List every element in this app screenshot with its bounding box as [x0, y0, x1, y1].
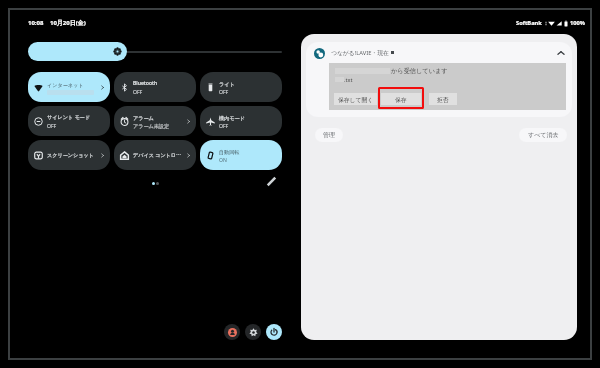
button[interactable]: 自動回転 — [200, 140, 282, 170]
button[interactable]: Edit quick settings — [263, 173, 279, 189]
staticText: .txt — [344, 76, 353, 84]
staticText: から受信しています — [391, 67, 448, 75]
staticText: 10月20日(金) — [50, 19, 86, 27]
staticText: アラーム — [133, 115, 154, 121]
button[interactable]: 拒否 — [429, 93, 457, 105]
staticText: 保存 — [395, 96, 407, 103]
button[interactable]: 機内モード — [200, 106, 282, 136]
staticText: 拒否 — [437, 96, 449, 103]
button[interactable]: デバイス コントロール — [114, 140, 196, 170]
button[interactable]: Bluetooth — [114, 72, 196, 102]
button[interactable]: ライト — [200, 72, 282, 102]
staticText: ライト — [219, 81, 235, 87]
staticText: Bluetooth — [133, 80, 158, 87]
staticText: OFF — [219, 123, 229, 130]
button[interactable]: サイレント モード — [28, 106, 110, 136]
staticText: デバイス コントロール — [133, 152, 184, 159]
staticText: アラーム未設定 — [133, 123, 170, 129]
button[interactable]: スクリーンショット — [28, 140, 110, 170]
button[interactable]: 保存 — [381, 93, 421, 105]
staticText: OFF — [47, 123, 57, 130]
button[interactable]: 管理 — [315, 128, 343, 142]
staticText: SoftBank — [516, 19, 542, 27]
button[interactable]: Power — [266, 324, 282, 340]
button[interactable]: Collapse notification — [555, 47, 567, 59]
staticText: OFF — [219, 89, 229, 96]
staticText: サイレント モード — [47, 114, 90, 121]
staticText: ON — [219, 157, 227, 164]
button[interactable]: User account — [224, 324, 240, 340]
staticText: スクリーンショット — [47, 152, 94, 158]
button[interactable]: Settings — [245, 324, 261, 340]
button[interactable]: アラーム — [114, 106, 196, 136]
button[interactable]: 保存して開く — [334, 93, 377, 105]
button[interactable] — [28, 42, 127, 61]
staticText: 保存して開く — [338, 96, 374, 103]
staticText: 10:08 — [28, 19, 44, 27]
button[interactable]: つながる!LAVIE・現在 — [306, 42, 572, 117]
staticText: 自動回転 — [219, 149, 240, 155]
staticText: つながる!LAVIE・現在 — [331, 49, 389, 57]
staticText: OFF — [133, 89, 143, 96]
button[interactable]: すべて消去 — [519, 128, 567, 142]
staticText: 管理 — [323, 131, 335, 139]
staticText: 100% — [570, 19, 585, 27]
staticText: すべて消去 — [528, 131, 559, 139]
staticText: インターネット — [47, 82, 84, 88]
staticText: 機内モード — [219, 115, 245, 121]
button[interactable]: インターネット — [28, 72, 110, 102]
